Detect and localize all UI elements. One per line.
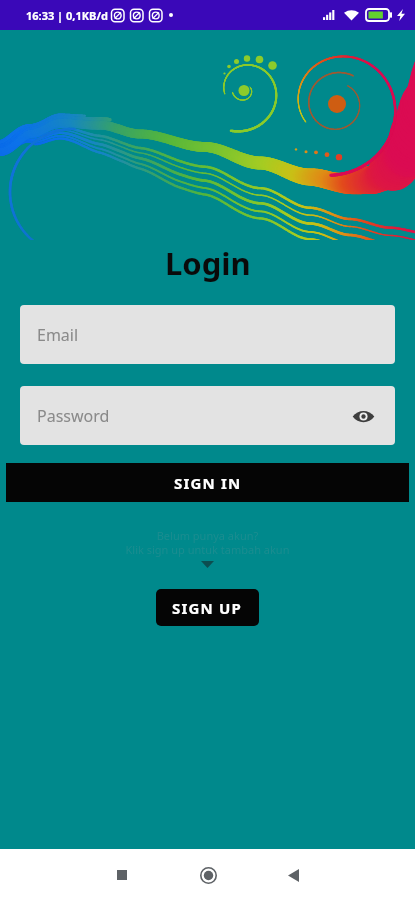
staticText: Password bbox=[37, 405, 110, 427]
staticText: Email bbox=[37, 324, 79, 346]
button[interactable]: Home bbox=[186, 853, 230, 897]
staticText: SIGN IN bbox=[174, 473, 242, 493]
button[interactable]: SIGN UP bbox=[156, 589, 259, 626]
button[interactable]: SIGN IN bbox=[6, 463, 409, 502]
button[interactable]: Show password bbox=[348, 401, 378, 431]
staticText: Belum punya akun? Klik sign up untuk tam… bbox=[0, 528, 415, 557]
button[interactable]: Email bbox=[20, 305, 395, 364]
button[interactable]: Password bbox=[20, 386, 395, 445]
staticText: SIGN UP bbox=[172, 598, 243, 618]
staticText: 16:33 | 0,1KB/d bbox=[26, 8, 108, 23]
button[interactable]: Back bbox=[271, 853, 315, 897]
staticText: Login bbox=[165, 242, 251, 284]
button[interactable]: Recents bbox=[100, 853, 144, 897]
